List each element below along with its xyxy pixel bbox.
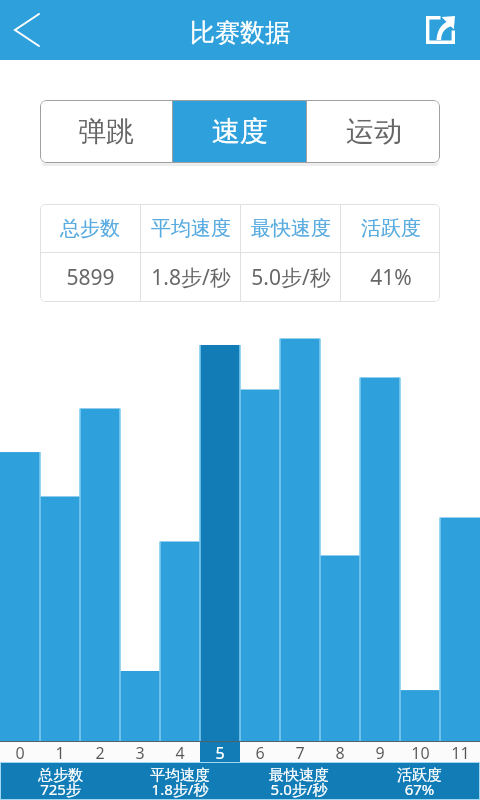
staticText: 7 xyxy=(295,742,305,762)
button[interactable]: 总步数 725步 xyxy=(1,763,120,799)
staticText: 最快速度 xyxy=(251,216,331,241)
staticText: 速度 xyxy=(212,114,268,149)
button[interactable]: 8 xyxy=(320,742,360,762)
button[interactable]: 弹跳 xyxy=(40,100,172,163)
button[interactable]: 速度 xyxy=(173,100,306,163)
button[interactable]: 平均速度 1.8步/秒 xyxy=(120,763,239,799)
staticText: 最快速度 5.0步/秒 xyxy=(269,766,329,799)
button[interactable]: 2 xyxy=(80,742,120,762)
staticText: 活跃度 xyxy=(361,216,421,241)
staticText: 平均速度 xyxy=(151,216,231,241)
button[interactable]: 5 xyxy=(200,742,240,762)
button[interactable]: 10 xyxy=(400,742,440,762)
staticText: 弹跳 xyxy=(78,114,134,149)
staticText: 4 xyxy=(175,742,185,762)
button[interactable]: 6 xyxy=(240,742,280,762)
staticText: 总步数 xyxy=(60,216,120,241)
button[interactable]: 最快速度 5.0步/秒 xyxy=(239,763,359,799)
button[interactable]: 7 xyxy=(280,742,320,762)
staticText: 6 xyxy=(255,742,265,762)
button[interactable]: Share xyxy=(400,0,480,60)
staticText: 5.0步/秒 xyxy=(251,263,331,292)
button[interactable]: 9 xyxy=(360,742,400,762)
staticText: 运动 xyxy=(346,114,402,149)
staticText: 8 xyxy=(335,742,345,762)
button[interactable]: 3 xyxy=(120,742,160,762)
button[interactable]: 活跃度 67% xyxy=(359,763,479,799)
staticText: 41% xyxy=(370,263,412,292)
staticText: 10 xyxy=(411,742,430,762)
staticText: 11 xyxy=(451,742,470,762)
staticText: 平均速度 1.8步/秒 xyxy=(150,766,210,799)
staticText: 比赛数据 xyxy=(190,17,290,48)
staticText: 9 xyxy=(375,742,385,762)
staticText: 5899 xyxy=(66,263,115,292)
button[interactable]: Back xyxy=(0,0,54,60)
staticText: 总步数 725步 xyxy=(38,766,83,799)
button[interactable]: 运动 xyxy=(307,100,440,163)
staticText: 2 xyxy=(95,742,105,762)
staticText: 1.8步/秒 xyxy=(151,263,231,292)
staticText: 1 xyxy=(55,742,65,762)
staticText: 0 xyxy=(15,742,25,762)
button[interactable]: 1 xyxy=(40,742,80,762)
staticText: 3 xyxy=(135,742,145,762)
staticText: 5 xyxy=(215,742,225,762)
button[interactable]: 4 xyxy=(160,742,200,762)
staticText: 活跃度 67% xyxy=(397,766,442,799)
button[interactable]: 11 xyxy=(440,742,480,762)
button[interactable]: 0 xyxy=(0,742,40,762)
